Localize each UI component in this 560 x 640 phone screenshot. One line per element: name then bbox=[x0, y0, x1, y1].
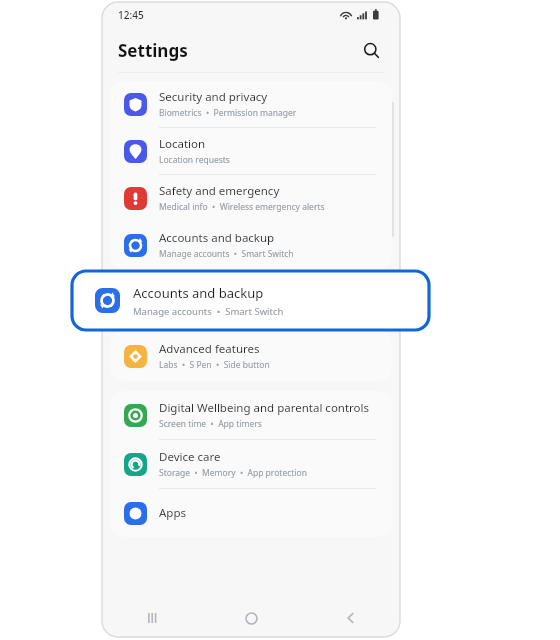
button[interactable]: Accounts and backup bbox=[110, 221, 392, 269]
staticText: Safety and emergency bbox=[159, 183, 280, 199]
staticText: Settings bbox=[118, 39, 188, 62]
button[interactable]: Recents bbox=[102, 603, 202, 633]
staticText: Manage accounts • Smart Switch bbox=[133, 305, 284, 318]
staticText: Manage accounts • Smart Switch bbox=[159, 248, 294, 260]
button[interactable]: Apps bbox=[110, 489, 392, 537]
staticText: Security and privacy bbox=[159, 89, 268, 105]
staticText: Google services bbox=[159, 302, 222, 314]
staticText: Accounts and backup bbox=[159, 230, 275, 246]
button[interactable]: Home bbox=[202, 603, 301, 633]
button[interactable]: Location bbox=[110, 128, 392, 174]
staticText: Biometrics • Permission manager bbox=[159, 107, 297, 119]
button[interactable]: Safety and emergency bbox=[110, 175, 392, 221]
staticText: Storage • Memory • App protection bbox=[159, 467, 307, 479]
button[interactable]: Accounts and backup bbox=[72, 271, 429, 330]
staticText: Labs • S Pen • Side button bbox=[159, 359, 270, 371]
button[interactable]: Digital Wellbeing and parental controls bbox=[110, 391, 392, 439]
button[interactable]: Search bbox=[358, 37, 384, 63]
button[interactable]: Back bbox=[301, 603, 400, 633]
staticText: Screen time • App timers bbox=[159, 418, 262, 430]
button[interactable]: Google bbox=[110, 275, 392, 323]
staticText: 12:45 bbox=[118, 8, 144, 22]
staticText: Google bbox=[159, 284, 198, 300]
staticText: Location bbox=[159, 136, 206, 152]
button[interactable]: Security and privacy bbox=[110, 81, 392, 127]
staticText: Device care bbox=[159, 449, 221, 465]
button[interactable]: Advanced features bbox=[110, 331, 392, 381]
staticText: Location requests bbox=[159, 154, 230, 166]
staticText: Advanced features bbox=[159, 341, 260, 357]
staticText: Accounts and backup bbox=[133, 284, 264, 302]
button[interactable]: Device care bbox=[110, 440, 392, 488]
staticText: Digital Wellbeing and parental controls bbox=[159, 400, 370, 416]
staticText: Medical info • Wireless emergency alerts bbox=[159, 201, 325, 213]
staticText: Apps bbox=[159, 505, 187, 521]
